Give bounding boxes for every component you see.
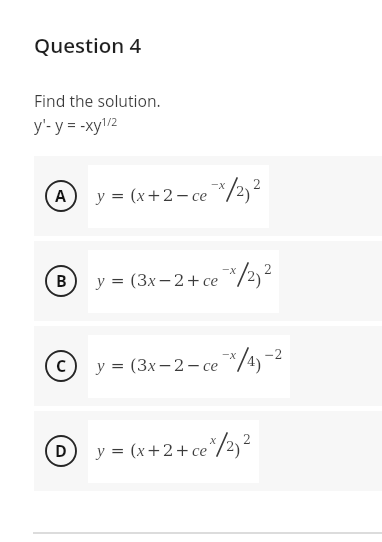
staticText: = ( [105, 185, 137, 205]
staticText: ce [203, 271, 219, 290]
staticText: C [56, 355, 67, 377]
button[interactable]: C [34, 326, 382, 406]
staticText: + 2 − [145, 185, 192, 205]
staticText: −x [210, 177, 226, 192]
staticText: − 2 + [156, 270, 203, 290]
staticText: D [55, 440, 67, 462]
staticText: −x [221, 347, 237, 362]
staticText: 2 [226, 438, 235, 454]
staticText: 4 [247, 353, 256, 369]
staticText: A [55, 185, 67, 207]
staticText: ) [255, 270, 262, 290]
staticText: 2 [253, 177, 261, 192]
staticText: ce [192, 441, 208, 460]
staticText: y [97, 441, 105, 460]
staticText: − 2 − [156, 355, 203, 375]
button[interactable]: D [34, 411, 382, 491]
staticText: y [97, 186, 105, 205]
staticText: x [210, 432, 216, 447]
staticText: 2 [243, 432, 251, 447]
staticText: y [97, 271, 105, 290]
staticText: ce [192, 186, 208, 205]
staticText: y [97, 356, 105, 375]
staticText: B [56, 270, 67, 292]
staticText: + 2 + [145, 440, 192, 460]
staticText: 2 [264, 262, 272, 277]
staticText: −2 [264, 347, 283, 362]
staticText: y'- y = -xy1/2 [34, 114, 118, 135]
staticText: x [137, 186, 145, 205]
staticText: = ( [105, 440, 137, 460]
button[interactable]: B [34, 241, 382, 321]
staticText: 2 [247, 268, 256, 284]
button[interactable]: A [34, 156, 382, 236]
staticText: ) [244, 185, 251, 205]
staticText: ce [203, 356, 219, 375]
staticText: 2 [236, 183, 245, 199]
staticText: −x [221, 262, 237, 277]
staticText: ) [234, 440, 241, 460]
staticText: = (3 [105, 355, 148, 375]
staticText: Question 4 [34, 31, 142, 59]
staticText: x [137, 441, 145, 460]
staticText: x [148, 356, 156, 375]
staticText: x [148, 271, 156, 290]
staticText: ) [255, 355, 262, 375]
staticText: = (3 [105, 270, 148, 290]
staticText: Find the solution. [34, 90, 161, 111]
